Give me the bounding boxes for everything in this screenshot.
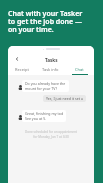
button[interactable]: Back xyxy=(13,55,21,63)
staticText: Done scheduled for an appointment for Mo… xyxy=(8,130,94,139)
staticText: Chat with your Tasker to get the job don… xyxy=(8,9,83,34)
button[interactable]: Chat xyxy=(65,64,94,75)
staticText: Chat xyxy=(75,67,84,72)
staticText: Great, finishing my todo. See you at 5. xyxy=(25,111,63,121)
staticText: Task info xyxy=(42,67,59,72)
button[interactable]: Task info xyxy=(36,64,65,75)
staticText: Yes, I just need it set up! xyxy=(46,96,83,101)
staticText: Tasks xyxy=(45,57,58,63)
staticText: Receipt xyxy=(15,67,29,72)
button[interactable]: Receipt xyxy=(8,64,36,75)
staticText: Do you already have the mount for your T… xyxy=(25,81,66,91)
